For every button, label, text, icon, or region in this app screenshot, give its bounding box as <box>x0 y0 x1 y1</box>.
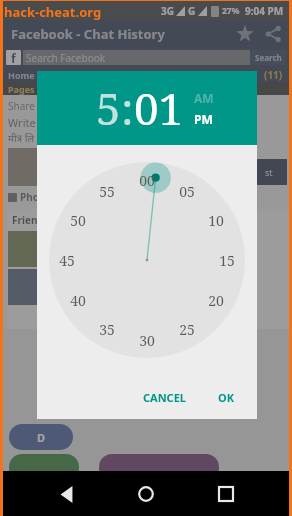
staticText: 45 <box>59 251 75 270</box>
staticText: Frien <box>12 213 38 227</box>
staticText: 10 <box>208 211 224 230</box>
staticText: CANCEL <box>143 390 186 405</box>
button[interactable]: 00 <box>134 167 160 193</box>
button[interactable]: 35 <box>94 316 120 342</box>
staticText: 00 <box>139 171 155 190</box>
button[interactable]: PM <box>194 111 213 127</box>
staticText: Pages <box>8 83 35 95</box>
staticText: G <box>188 4 196 18</box>
staticText: Pho <box>20 190 39 204</box>
staticText: 25 <box>179 320 195 339</box>
button[interactable]: AM <box>194 90 214 106</box>
staticText: 30 <box>139 331 155 350</box>
button[interactable]: Recents <box>209 477 243 511</box>
staticText: 15 <box>219 251 235 270</box>
button[interactable]: 45 <box>54 247 80 273</box>
button[interactable]: Favorite <box>235 24 255 44</box>
staticText: PM <box>194 111 213 127</box>
button[interactable]: 05 <box>174 178 200 204</box>
button[interactable]: Back <box>49 477 83 511</box>
staticText: 01 <box>134 78 184 138</box>
button[interactable]: 15 <box>214 247 240 273</box>
button[interactable]: 25 <box>174 316 200 342</box>
staticText: 05 <box>179 182 195 201</box>
button[interactable]: 55 <box>94 178 120 204</box>
staticText: 50 <box>70 211 86 230</box>
staticText: 27% <box>222 5 240 17</box>
button[interactable]: OK <box>210 384 243 411</box>
staticText: D <box>37 430 46 445</box>
staticText: 5 <box>96 78 121 138</box>
button[interactable]: D <box>9 424 73 450</box>
button[interactable]: Share <box>263 24 283 44</box>
staticText: 3G <box>161 4 174 18</box>
staticText: hack-cheat.org <box>4 3 102 21</box>
button[interactable]: 50 <box>65 207 91 233</box>
staticText: Write <box>8 115 39 130</box>
staticText: Facebook - Chat History <box>11 25 165 43</box>
staticText: Search <box>255 52 282 63</box>
staticText: मीत्र लि <box>8 131 35 145</box>
button[interactable]: 30 <box>134 327 160 353</box>
button[interactable]: Home <box>129 477 163 511</box>
staticText: 40 <box>70 291 86 310</box>
staticText: (11) <box>264 68 283 82</box>
button[interactable] <box>99 454 219 481</box>
button[interactable]: 40 <box>65 287 91 313</box>
staticText: 35 <box>99 320 115 339</box>
staticText: Search Facebook <box>26 51 106 65</box>
staticText: 9:04 PM <box>245 4 284 18</box>
button[interactable]: Search <box>250 50 286 65</box>
staticText: Home <box>8 69 35 81</box>
button[interactable]: 20 <box>203 287 229 313</box>
staticText: st <box>265 166 273 178</box>
staticText: : <box>121 78 134 138</box>
staticText: f <box>11 50 16 65</box>
staticText: 20 <box>208 291 224 310</box>
button[interactable]: CANCEL <box>135 384 194 411</box>
staticText: OK <box>218 390 235 405</box>
button[interactable]: st <box>251 159 287 185</box>
staticText: AM <box>194 90 214 106</box>
staticText: 55 <box>99 182 115 201</box>
button[interactable] <box>9 454 79 481</box>
staticText: Share v <box>8 99 43 113</box>
button[interactable]: 10 <box>203 207 229 233</box>
